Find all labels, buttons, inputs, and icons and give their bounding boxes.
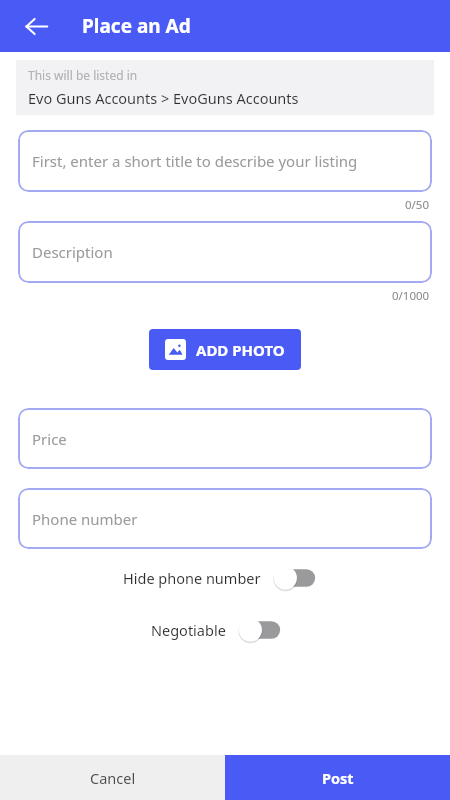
button[interactable]: ADD PHOTO [149, 329, 301, 370]
staticText: This will be listed in [28, 67, 138, 83]
staticText: First, enter a short title to describe y… [32, 151, 358, 171]
button[interactable]: Cancel [0, 755, 225, 800]
button[interactable]: Description [18, 221, 432, 283]
staticText: Post [322, 768, 354, 788]
staticText: Price [32, 429, 67, 449]
staticText: Evo Guns Accounts > EvoGuns Accounts [28, 88, 299, 108]
button[interactable]: Negotiable [236, 615, 284, 645]
staticText: ADD PHOTO [196, 340, 285, 360]
staticText: Phone number [32, 509, 138, 529]
staticText: Negotiable [151, 620, 226, 640]
staticText: Hide phone number [123, 568, 261, 588]
button[interactable]: Hide phone number [271, 563, 319, 593]
staticText: Cancel [90, 768, 136, 788]
staticText: Place an Ad [82, 13, 191, 39]
button[interactable]: Post [225, 755, 450, 800]
button[interactable]: This will be listed in [16, 60, 434, 115]
button[interactable]: First, enter a short title to describe y… [18, 130, 432, 192]
button[interactable]: Phone number [18, 488, 432, 549]
staticText: Description [32, 242, 113, 262]
staticText: 0/50 [405, 197, 430, 213]
button[interactable]: Back [14, 4, 58, 48]
staticText: 0/1000 [392, 288, 430, 304]
button[interactable]: Price [18, 408, 432, 469]
